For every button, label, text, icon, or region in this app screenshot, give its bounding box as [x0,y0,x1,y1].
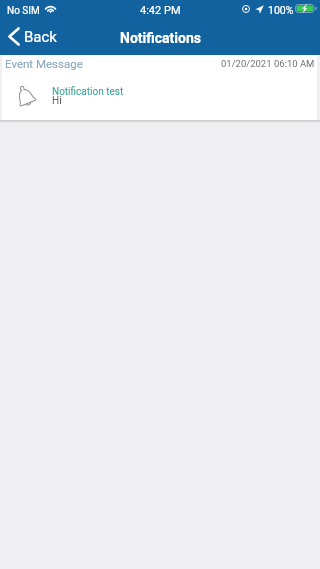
button[interactable]: Event Message [2,55,317,120]
staticText: 01/20/2021 06:10 AM [221,58,315,69]
staticText: Notification test [52,86,124,98]
staticText: No SIM [7,5,40,17]
staticText: Back [24,28,57,46]
staticText: 100% [268,4,294,16]
staticText: Hi [52,95,62,107]
staticText: 4:42 PM [140,4,181,17]
button[interactable]: Back [0,23,69,52]
staticText: Event Message [5,57,83,70]
staticText: Notifications [120,30,201,46]
